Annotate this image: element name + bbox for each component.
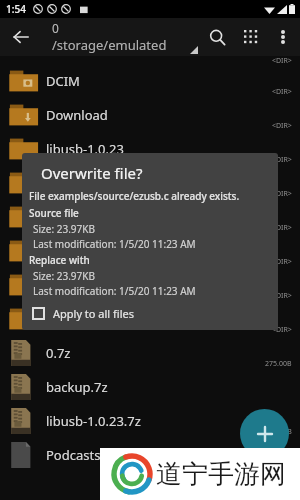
- button[interactable]: libusb-1.0.23.7z: [0, 404, 300, 438]
- staticText: Apply to all files: [53, 306, 134, 321]
- button[interactable]: Download: [0, 98, 300, 132]
- staticText: Overwrite file?: [41, 163, 143, 183]
- staticText: 1:54: [6, 2, 26, 16]
- staticText: File examples/source/ezusb.c already exi…: [29, 189, 240, 203]
- staticText: /storage/emulated: [52, 36, 167, 54]
- staticText: Pictures: [46, 276, 95, 294]
- staticText: <DIR>: [272, 291, 292, 301]
- staticText: <DIR>: [272, 223, 292, 233]
- staticText: 0: [52, 20, 59, 36]
- staticText: <DIR>: [272, 121, 292, 131]
- staticText: <DIR>: [272, 257, 292, 267]
- staticText: Last modification: 1/5/20 11:23 AM: [33, 284, 196, 298]
- button[interactable]: Search: [200, 20, 234, 54]
- staticText: Movies: [46, 174, 89, 192]
- staticText: Replace with: [29, 253, 90, 267]
- staticText: libusb-1.0.23: [46, 140, 124, 158]
- staticText: Size: 23.97KB: [33, 222, 95, 236]
- staticText: <DIR>: [272, 189, 292, 199]
- staticText: libusb-1.0.23.7z: [46, 412, 141, 430]
- staticText: 道宁手游网: [156, 458, 286, 491]
- staticText: 4KB: [279, 427, 292, 437]
- staticText: backup.7z: [46, 378, 108, 396]
- staticText: Download: [46, 106, 108, 124]
- button[interactable]: Movies: [0, 166, 300, 200]
- button[interactable]: Notifications: [0, 234, 300, 268]
- staticText: Size: 23.97KB: [33, 269, 95, 283]
- staticText: Podcasts.txt: [46, 446, 121, 464]
- button[interactable]: More options: [268, 22, 298, 52]
- button[interactable]: Music: [0, 200, 300, 234]
- button[interactable]: Grid view: [234, 20, 268, 54]
- button[interactable]: Ringtones: [0, 302, 300, 336]
- staticText: 0.7z: [46, 344, 71, 362]
- staticText: Music: [46, 208, 82, 226]
- button[interactable]: Add: [240, 409, 289, 458]
- staticText: Last modification: 1/5/20 11:23 AM: [33, 237, 196, 251]
- button[interactable]: 0.7z: [0, 336, 300, 370]
- button[interactable]: DCIM: [0, 64, 300, 98]
- button[interactable]: Podcasts.txt: [0, 438, 300, 472]
- staticText: Source file: [29, 206, 79, 220]
- button[interactable]: Apply to all files: [32, 303, 134, 323]
- button[interactable]: Back: [4, 20, 38, 54]
- staticText: Ringtones: [46, 310, 108, 328]
- staticText: <DIR>: [272, 56, 292, 64]
- button[interactable]: Pictures: [0, 268, 300, 302]
- staticText: <DIR>: [272, 87, 292, 97]
- staticText: Notifications: [46, 242, 124, 260]
- staticText: <DIR>: [272, 155, 292, 165]
- staticText: 275.00B: [265, 359, 292, 369]
- button[interactable]: libusb-1.0.23: [0, 132, 300, 166]
- staticText: DCIM: [46, 72, 80, 90]
- staticText: <DIR>: [272, 325, 292, 335]
- button[interactable]: backup.7z: [0, 370, 300, 404]
